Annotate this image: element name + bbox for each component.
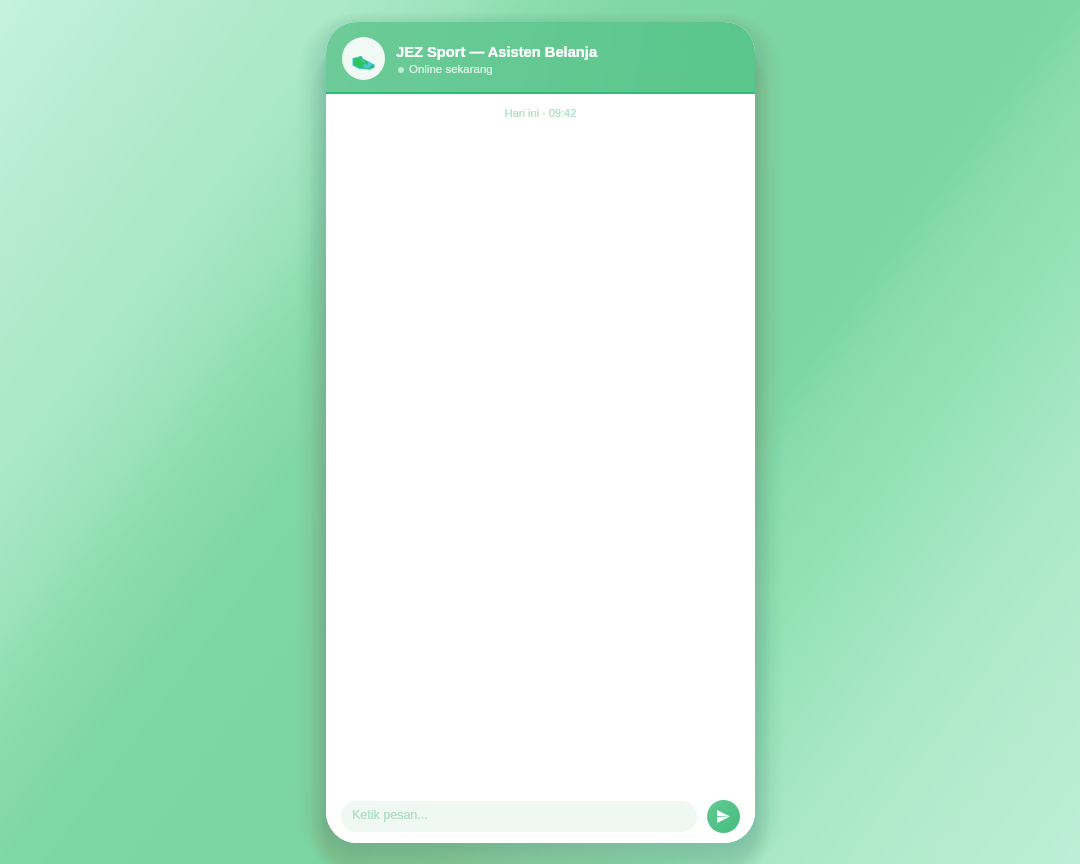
staticText: JEZ Sport — Asisten Belanja [396,44,598,60]
staticText: Ketik pesan... [352,808,428,822]
staticText: Hari ini · 09:42 [326,107,755,119]
staticText: Online sekarang [409,63,493,76]
button[interactable]: Kirim pesan [707,800,740,833]
button[interactable]: Ketik pesan... [341,801,697,832]
button[interactable] [326,22,755,94]
